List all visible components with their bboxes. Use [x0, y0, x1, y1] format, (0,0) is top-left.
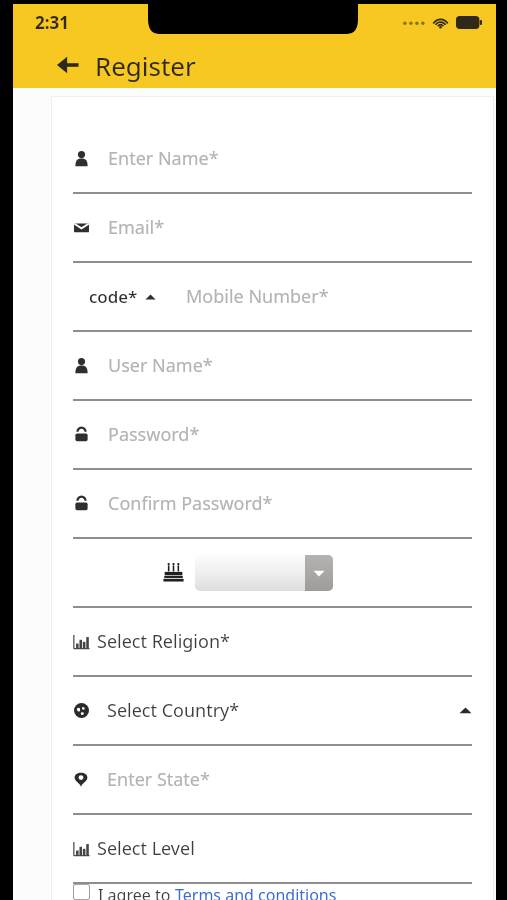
staticText: Select Country* — [107, 698, 240, 723]
staticText: Enter State* — [107, 767, 210, 792]
staticText: User Name* — [108, 353, 213, 378]
button[interactable]: Select Religion* — [52, 608, 493, 675]
staticText: Select Religion* — [97, 629, 230, 654]
button[interactable]: Confirm Password* — [52, 470, 493, 537]
staticText: Mobile Number* — [186, 284, 329, 309]
staticText: Confirm Password* — [108, 491, 273, 516]
button[interactable]: Select Country* — [52, 677, 493, 744]
staticText: I agree to — [98, 884, 175, 900]
button[interactable]: Enter State* — [52, 746, 493, 813]
button[interactable]: Back — [53, 50, 83, 80]
button[interactable]: Password* — [52, 401, 493, 468]
staticText: Password* — [108, 422, 200, 447]
staticText: Email* — [108, 215, 165, 240]
button[interactable]: Select birthday — [52, 539, 493, 606]
button[interactable]: code* — [52, 263, 493, 330]
button[interactable]: User Name* — [52, 332, 493, 399]
staticText: Enter Name* — [108, 146, 219, 171]
button[interactable]: Email* — [52, 194, 493, 261]
button[interactable]: Select Level — [52, 815, 493, 882]
staticText: Register — [95, 48, 196, 83]
button[interactable]: code* — [89, 285, 156, 308]
button[interactable]: I agree to — [52, 884, 493, 900]
button[interactable]: Enter Name* — [52, 125, 493, 192]
staticText: 2:31 — [35, 11, 69, 34]
staticText: Select Level — [97, 836, 195, 861]
staticText: Terms and conditions — [175, 884, 337, 900]
staticText: code* — [89, 285, 138, 308]
button[interactable]: Select birthday — [195, 555, 333, 591]
